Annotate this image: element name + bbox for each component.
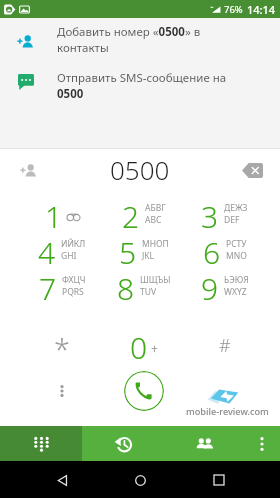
button[interactable]: 4 bbox=[21, 232, 103, 268]
button[interactable]: Dialpad bbox=[0, 426, 82, 461]
staticText: РСТУ bbox=[226, 238, 247, 250]
staticText: GHI bbox=[61, 250, 77, 262]
staticText: DEF bbox=[224, 214, 240, 226]
button[interactable]: Back bbox=[45, 463, 79, 497]
button[interactable]: 7 bbox=[21, 268, 103, 304]
button[interactable]: Recent apps bbox=[202, 463, 236, 497]
staticText: ИЙКЛ bbox=[61, 238, 86, 250]
staticText: ДЕЖЗ bbox=[224, 202, 248, 214]
staticText: 5 bbox=[119, 232, 137, 268]
button[interactable]: More options bbox=[21, 367, 103, 415]
staticText: # bbox=[219, 333, 231, 358]
button[interactable]: Add to contacts bbox=[8, 150, 48, 190]
staticText: 4 bbox=[38, 232, 56, 268]
staticText: ШЩЪЫ bbox=[140, 274, 171, 286]
staticText: 7 bbox=[39, 268, 57, 304]
button[interactable]: Backspace bbox=[232, 150, 272, 190]
staticText: 14:14 bbox=[247, 2, 276, 17]
button[interactable]: 9 bbox=[184, 268, 265, 304]
button[interactable]: 6 bbox=[184, 232, 265, 268]
staticText: JKL bbox=[142, 250, 155, 262]
staticText: ЬЭЮЯ bbox=[224, 274, 249, 286]
staticText: + bbox=[151, 340, 158, 356]
button[interactable]: 5 bbox=[103, 232, 184, 268]
staticText: 76% bbox=[224, 3, 243, 16]
staticText: ABC bbox=[145, 214, 162, 226]
staticText: 2 bbox=[122, 196, 140, 232]
staticText: 0500 bbox=[110, 152, 170, 187]
button[interactable]: 1 bbox=[21, 196, 103, 232]
button[interactable]: 2 bbox=[103, 196, 184, 232]
button[interactable]: # bbox=[184, 327, 265, 363]
staticText: PQRS bbox=[62, 286, 84, 298]
button[interactable]: 8 bbox=[103, 268, 184, 304]
button[interactable]: Recents bbox=[82, 426, 164, 461]
button[interactable]: Добавить номер «0500» в контакты bbox=[0, 18, 280, 62]
staticText: 3 bbox=[201, 196, 219, 232]
staticText: * bbox=[54, 329, 70, 365]
staticText: 9 bbox=[201, 268, 219, 304]
staticText: Отправить SMS-сообщение на bbox=[57, 70, 227, 86]
staticText: 6 bbox=[203, 232, 221, 268]
button[interactable]: Home bbox=[123, 463, 157, 497]
button[interactable]: More options bbox=[244, 426, 280, 461]
staticText: MNO bbox=[226, 250, 247, 262]
button[interactable]: 0 bbox=[103, 327, 184, 363]
button[interactable]: * bbox=[21, 327, 103, 363]
staticText: Добавить номер «0500» в контакты bbox=[57, 24, 227, 55]
staticText: 8 bbox=[117, 268, 135, 304]
staticText: ФХЦЧ bbox=[62, 274, 86, 286]
staticText: 0500 bbox=[57, 86, 84, 102]
button[interactable]: Contacts bbox=[164, 426, 244, 461]
staticText: TUV bbox=[140, 286, 157, 298]
staticText: 1 bbox=[45, 196, 63, 232]
button[interactable]: Отправить SMS-сообщение на bbox=[0, 62, 280, 110]
staticText: АБВГ bbox=[145, 202, 166, 214]
button[interactable]: 3 bbox=[184, 196, 265, 232]
staticText: mobile-review.com bbox=[186, 405, 269, 418]
staticText: WXYZ bbox=[224, 286, 247, 298]
staticText: 0 bbox=[130, 327, 148, 363]
staticText: МНОП bbox=[142, 238, 169, 250]
button[interactable]: Call bbox=[124, 371, 164, 411]
